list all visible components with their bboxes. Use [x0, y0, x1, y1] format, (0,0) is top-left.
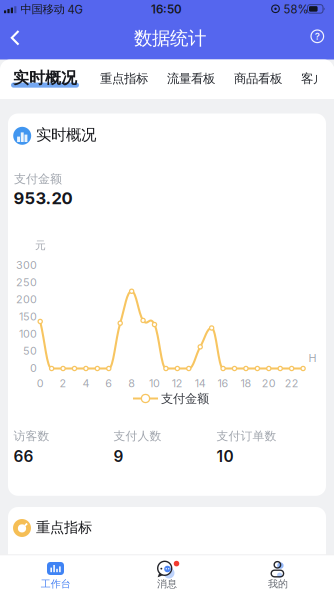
staticText: 重点指标 [100, 71, 148, 86]
button[interactable]: 流量看板 [0, 59, 220, 85]
staticText: 实时概况 [13, 68, 77, 88]
staticText: 150 [19, 310, 37, 323]
staticText: 0 [37, 377, 44, 390]
staticText: 8 [128, 377, 135, 390]
staticText: 22 [285, 377, 299, 390]
staticText: 14 [195, 377, 206, 390]
staticText: 18 [240, 377, 251, 390]
staticText: 0 [30, 361, 37, 375]
staticText: 支付人数 [113, 429, 161, 443]
staticText: 客户分析 [301, 71, 334, 86]
staticText: H [308, 351, 316, 365]
staticText: 953.20 [13, 188, 72, 208]
button[interactable]: 客户分析 [0, 59, 220, 85]
button[interactable]: 重点指标 [0, 59, 220, 85]
staticText: 58% [283, 2, 308, 16]
staticText: 10 [149, 377, 160, 390]
button[interactable]: 我的 [222, 554, 334, 591]
button[interactable]: 返回 [4, 25, 32, 50]
staticText: ? [315, 31, 320, 42]
staticText: 66 [13, 447, 33, 466]
staticText: 支付金额 [14, 171, 62, 186]
staticText: 4 [82, 377, 89, 390]
staticText: 工作台 [41, 577, 71, 590]
staticText: 元 [35, 239, 46, 252]
button[interactable]: 工作台 [0, 554, 220, 591]
staticText: 消息 [157, 577, 177, 590]
staticText: 6 [105, 377, 112, 390]
staticText: 200 [16, 293, 37, 306]
staticText: 100 [19, 327, 37, 340]
staticText: 中国移动 4G [20, 2, 82, 16]
staticText: 16:50 [151, 2, 182, 16]
staticText: 10 [216, 447, 233, 466]
staticText: 300 [16, 259, 37, 272]
staticText: 16 [218, 377, 229, 390]
staticText: 2 [60, 377, 67, 390]
staticText: 我的 [268, 577, 288, 590]
staticText: 支付金额 [161, 391, 209, 406]
staticText: 数据统计 [134, 27, 206, 50]
staticText: 访客数 [13, 429, 49, 443]
staticText: 支付订单数 [216, 429, 276, 443]
staticText: 50 [23, 344, 37, 357]
button[interactable]: 实时概况 [0, 59, 220, 85]
staticText: 流量看板 [167, 71, 215, 86]
button[interactable]: 商品看板 [0, 59, 220, 85]
staticText: 9 [113, 447, 123, 466]
button[interactable]: 帮助 [305, 24, 329, 48]
staticText: 250 [16, 276, 37, 289]
staticText: 12 [172, 377, 183, 390]
staticText: 20 [262, 377, 276, 390]
staticText: 商品看板 [234, 71, 282, 86]
staticText: 实时概况 [36, 125, 96, 144]
staticText: 重点指标 [36, 519, 92, 536]
button[interactable]: 消息 [111, 554, 334, 591]
